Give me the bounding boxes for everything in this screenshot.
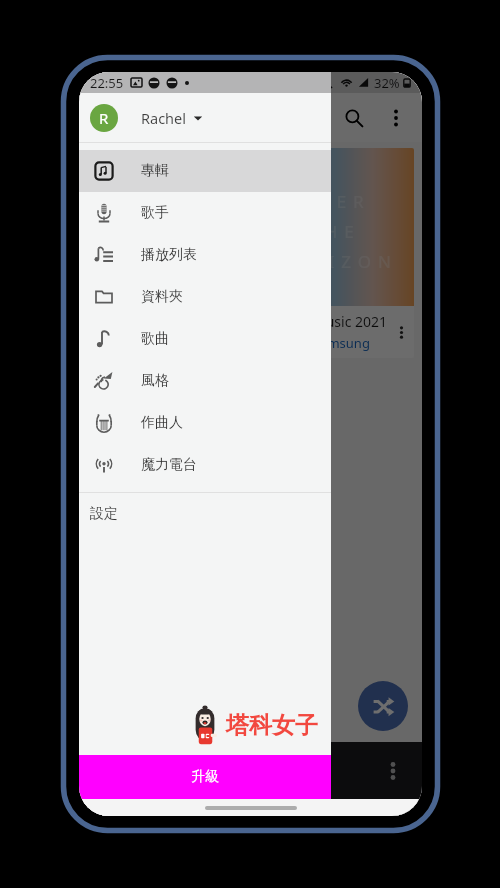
staticText: 塔科女子 bbox=[226, 711, 318, 740]
button[interactable]: 資料夾 bbox=[79, 276, 331, 318]
staticText: 設定 bbox=[90, 505, 118, 523]
button[interactable]: 設定 bbox=[79, 493, 331, 535]
staticText: 作曲人 bbox=[141, 414, 183, 432]
button[interactable]: More options bbox=[378, 756, 408, 786]
button[interactable]: Search bbox=[334, 98, 374, 138]
staticText: 風格 bbox=[141, 372, 169, 390]
staticText: 升級 bbox=[191, 768, 219, 786]
staticText: HORIZON bbox=[271, 250, 398, 273]
staticText: 歌曲 bbox=[141, 330, 169, 348]
button[interactable]: Home bbox=[205, 806, 297, 810]
button[interactable]: 專輯 bbox=[79, 150, 331, 192]
staticText: 22:55 bbox=[90, 74, 124, 92]
staticText: 魔力電台 bbox=[141, 456, 197, 474]
button[interactable]: Shuffle bbox=[358, 681, 408, 731]
staticText: THE bbox=[308, 220, 361, 243]
staticText: HORIZON bbox=[103, 250, 230, 273]
button[interactable]: 作曲人 bbox=[79, 402, 331, 444]
staticText: R bbox=[99, 108, 109, 128]
staticText: 32% bbox=[374, 74, 400, 92]
button[interactable]: 歌曲 bbox=[79, 318, 331, 360]
staticText: OVER bbox=[299, 190, 371, 213]
staticText: Samsung bbox=[313, 334, 370, 352]
staticText: 資料夾 bbox=[141, 288, 183, 306]
staticText: 專輯 bbox=[141, 162, 169, 180]
staticText: OVER bbox=[130, 190, 202, 213]
button[interactable]: 歌手 bbox=[79, 192, 331, 234]
staticText: Rachel bbox=[141, 108, 186, 128]
staticText: Samsung bbox=[145, 334, 202, 352]
button[interactable]: 播放列表 bbox=[79, 234, 331, 276]
button[interactable]: OVER bbox=[255, 148, 414, 358]
button[interactable]: 風格 bbox=[79, 360, 331, 402]
staticText: 歌手 bbox=[141, 204, 169, 222]
button[interactable]: Album options bbox=[388, 319, 414, 345]
button[interactable]: More options bbox=[378, 100, 414, 136]
staticText: Music 2021 bbox=[313, 312, 388, 331]
staticText: 播放列表 bbox=[141, 246, 197, 264]
button[interactable]: R bbox=[79, 93, 331, 142]
button[interactable]: OVER bbox=[87, 148, 245, 358]
button[interactable]: 升級 bbox=[79, 755, 331, 799]
button[interactable]: 魔力電台 bbox=[79, 444, 331, 486]
